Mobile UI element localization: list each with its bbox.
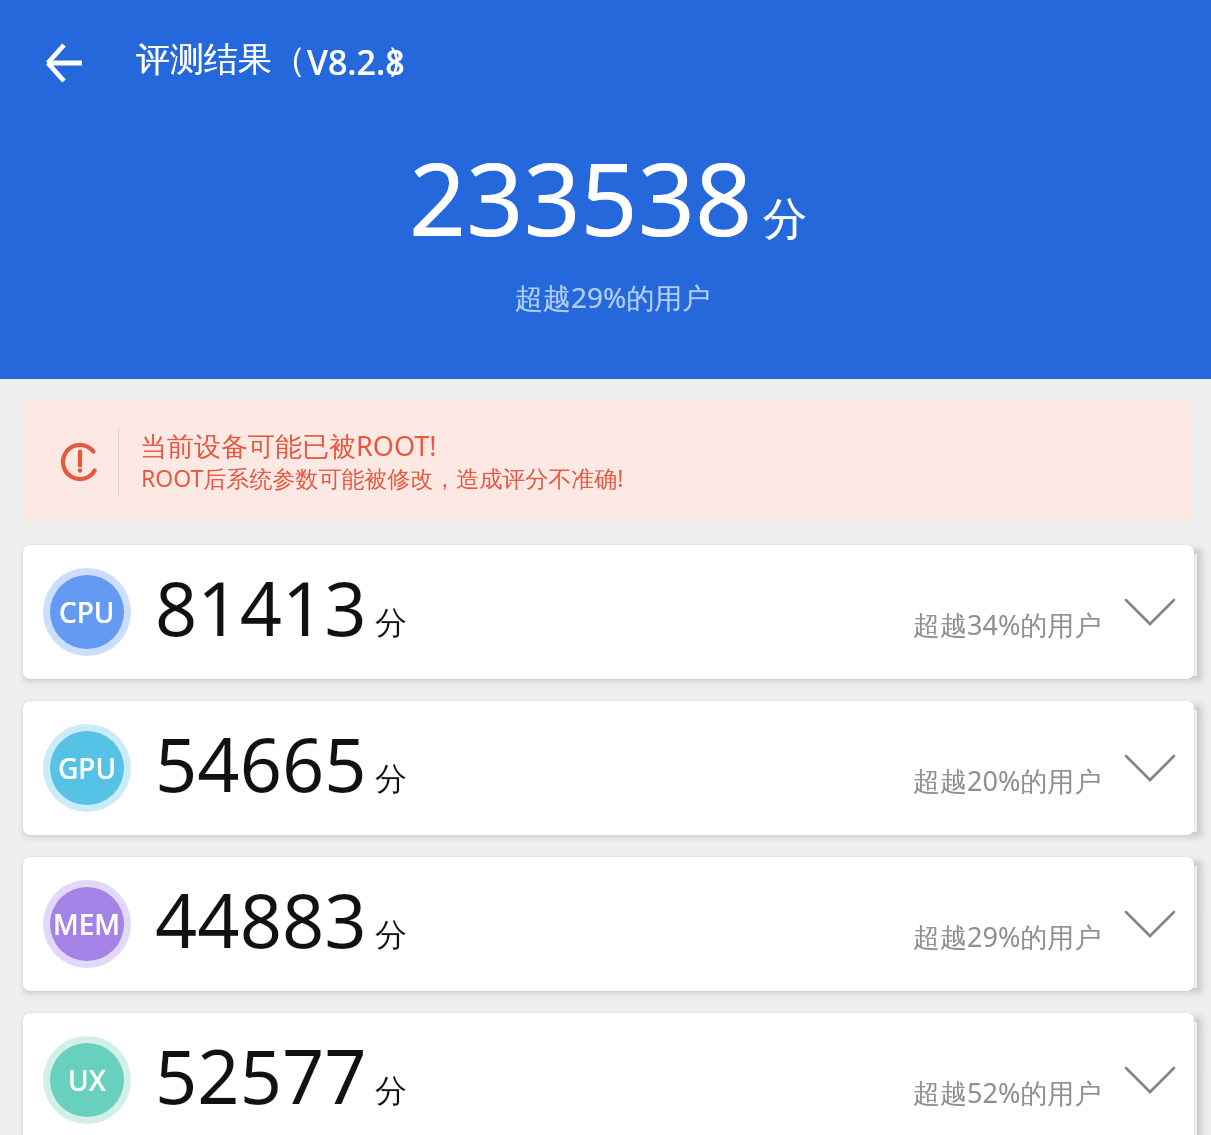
staticText: MEM	[53, 905, 121, 943]
staticText: UX	[68, 1061, 106, 1099]
button[interactable]: CPU	[23, 545, 1194, 679]
staticText: 44883	[155, 869, 367, 970]
button[interactable]: GPU	[23, 701, 1194, 835]
staticText: 评测结果	[136, 38, 272, 81]
staticText: 分	[375, 915, 407, 955]
staticText: 超越34%的用户	[913, 606, 1102, 643]
staticText: 超越52%的用户	[913, 1074, 1102, 1111]
staticText: 超越20%的用户	[913, 762, 1102, 799]
button[interactable]: 当前设备可能已被ROOT!	[23, 401, 1194, 522]
staticText: 81413	[155, 557, 367, 658]
staticText: （	[272, 38, 306, 81]
staticText: 当前设备可能已被ROOT!	[140, 427, 437, 464]
staticText: 分	[375, 1071, 407, 1111]
button[interactable]: UX	[23, 1013, 1194, 1135]
staticText: 分	[763, 192, 807, 247]
staticText: ）	[386, 38, 420, 81]
staticText: CPU	[59, 593, 115, 631]
staticText: V8.2.8	[307, 39, 405, 85]
staticText: 52577	[155, 1025, 367, 1126]
button[interactable]: Back	[22, 21, 106, 105]
staticText: GPU	[58, 749, 117, 787]
staticText: 超越29%的用户	[913, 918, 1102, 955]
staticText: 54665	[155, 713, 367, 814]
button[interactable]: MEM	[23, 857, 1194, 991]
staticText: 分	[375, 603, 407, 643]
staticText: ROOT后系统参数可能被修改，造成评分不准确!	[141, 462, 624, 493]
staticText: 分	[375, 759, 407, 799]
staticText: 233538	[409, 129, 753, 265]
staticText: 超越29%的用户	[515, 278, 711, 316]
